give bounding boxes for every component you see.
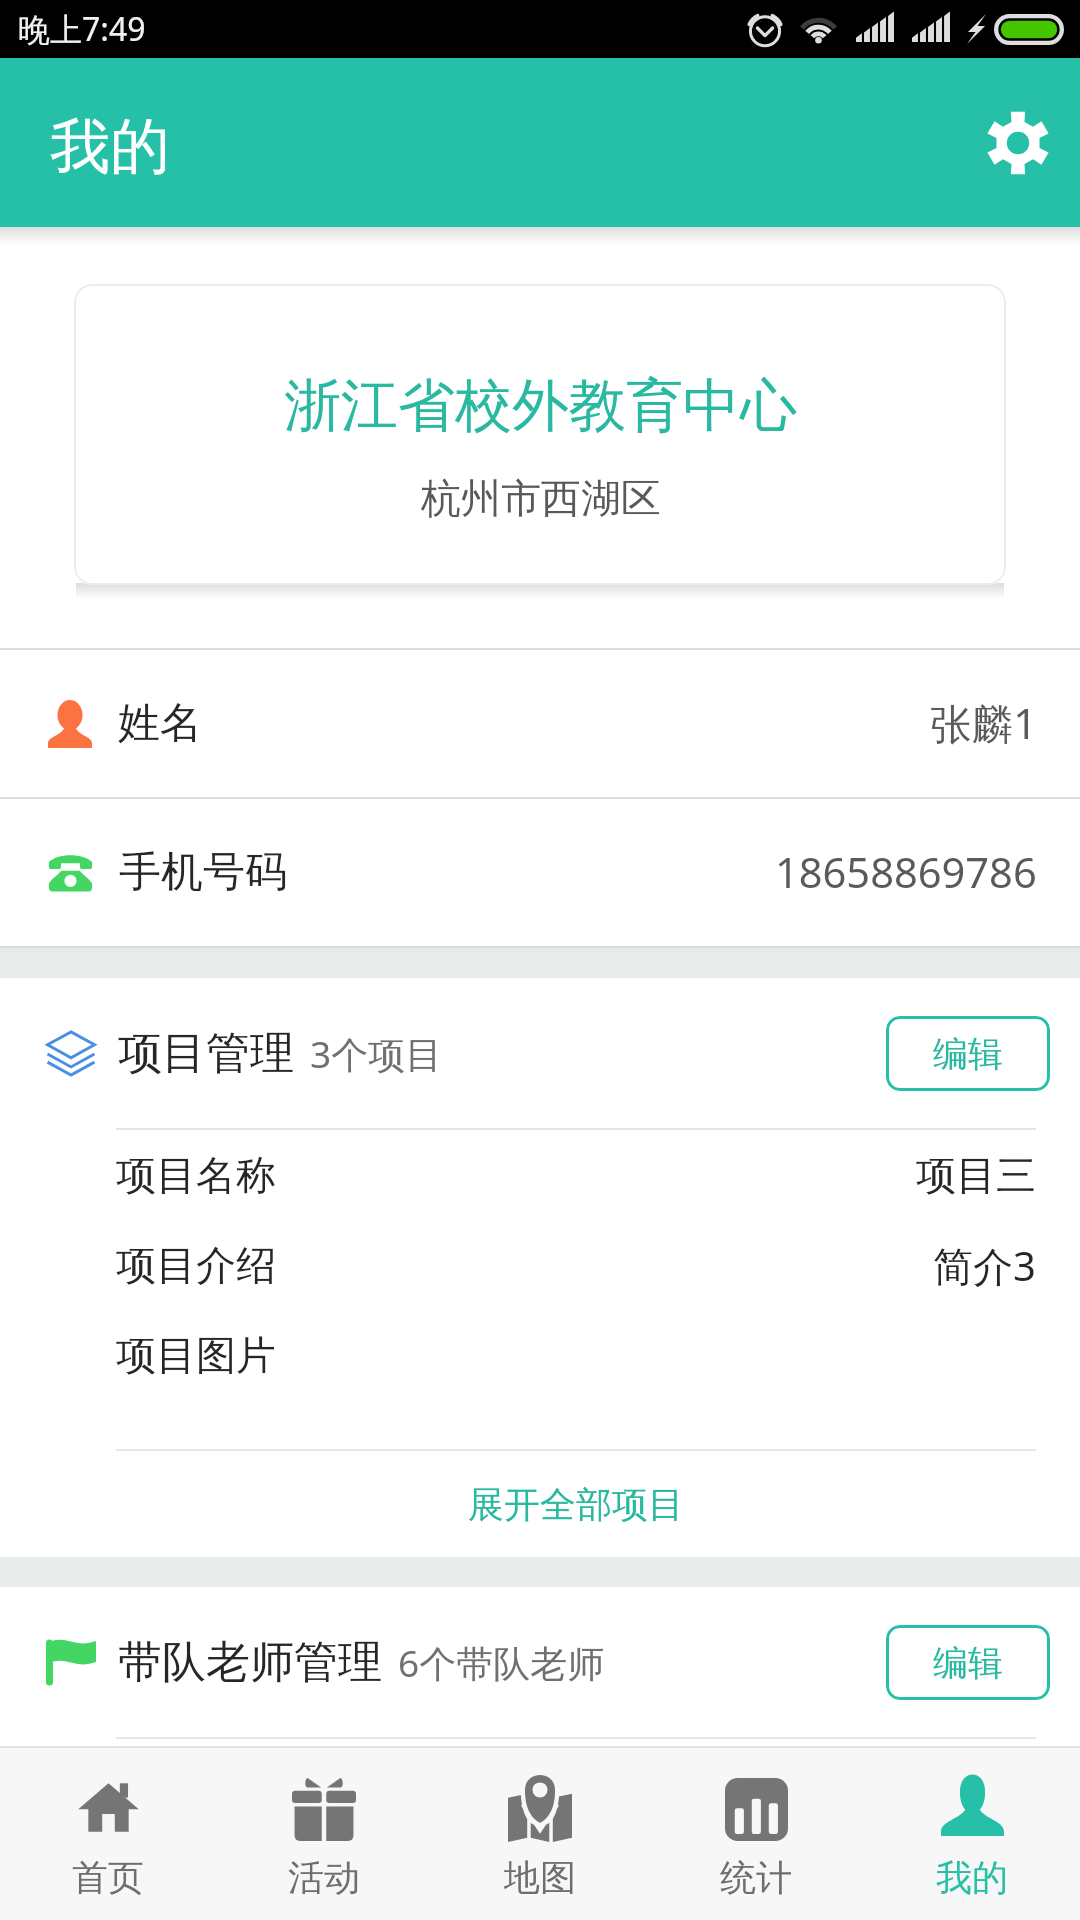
button[interactable]: 编辑: [886, 1016, 1050, 1091]
staticText: 3个项目: [310, 1028, 443, 1079]
staticText: 项目管理: [118, 1026, 294, 1081]
staticText: 项目三: [916, 1150, 1036, 1200]
button[interactable]: 浙江省校外教育中心: [74, 284, 1006, 585]
staticText: 张麟1: [930, 695, 1037, 752]
staticText: 简介3: [933, 1238, 1036, 1293]
staticText: 浙江省校外教育中心: [284, 370, 797, 442]
staticText: 姓名: [118, 697, 202, 750]
button[interactable]: 活动: [216, 1769, 432, 1900]
button[interactable]: 项目介绍: [0, 1220, 1080, 1310]
button[interactable]: 展开全部项目: [0, 1451, 1080, 1557]
button[interactable]: 项目图片: [0, 1310, 1080, 1400]
button[interactable]: 首页: [0, 1769, 216, 1900]
button[interactable]: 带队老师管理: [0, 1587, 1080, 1737]
staticText: 项目介绍: [116, 1240, 276, 1290]
staticText: 项目名称: [116, 1150, 276, 1200]
staticText: 晚上7:49: [18, 7, 146, 51]
staticText: 首页: [72, 1855, 144, 1900]
staticText: 带队老师管理: [118, 1635, 382, 1690]
staticText: 手机号码: [119, 846, 287, 899]
staticText: 地图: [504, 1855, 576, 1900]
button[interactable]: 项目管理: [0, 978, 1080, 1128]
staticText: 统计: [720, 1855, 792, 1900]
button[interactable]: 手机号码: [0, 799, 1080, 946]
button[interactable]: 项目名称: [0, 1130, 1080, 1220]
staticText: 我的: [936, 1855, 1008, 1900]
button[interactable]: 地图: [432, 1769, 648, 1900]
staticText: 活动: [288, 1855, 360, 1900]
staticText: 6个带队老师: [398, 1637, 605, 1688]
staticText: 编辑: [933, 1032, 1003, 1076]
button[interactable]: 统计: [648, 1769, 864, 1900]
staticText: 展开全部项目: [468, 1482, 684, 1527]
staticText: 项目图片: [116, 1330, 276, 1380]
staticText: 杭州市西湖区: [421, 473, 661, 523]
button[interactable]: Settings: [966, 91, 1070, 195]
button[interactable]: 姓名: [0, 650, 1080, 797]
button[interactable]: 编辑: [886, 1625, 1050, 1700]
button[interactable]: 我的: [864, 1769, 1080, 1900]
staticText: 编辑: [933, 1641, 1003, 1685]
staticText: 我的: [50, 109, 170, 185]
staticText: 18658869786: [775, 844, 1037, 901]
